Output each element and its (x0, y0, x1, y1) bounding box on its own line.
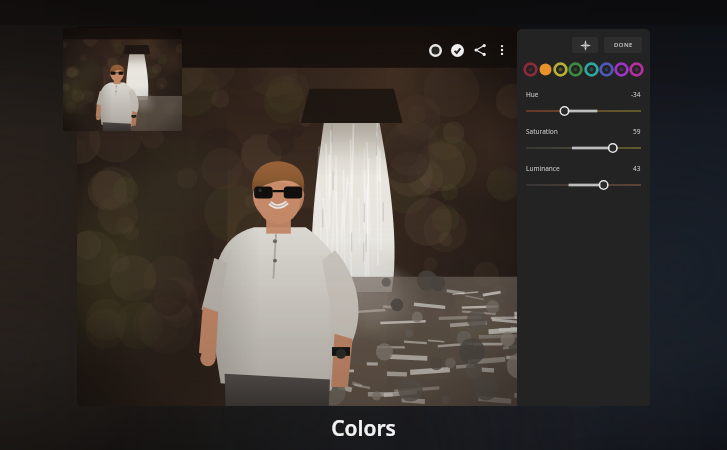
button[interactable]: Help (77, 26, 520, 406)
button[interactable]: Colour swatch (630, 63, 643, 76)
button[interactable]: Hue (526, 90, 641, 127)
button[interactable]: Target picker (572, 37, 598, 53)
button[interactable]: Saturation (526, 127, 641, 164)
button[interactable]: Colour swatch (539, 63, 552, 76)
staticText: DONE (614, 41, 633, 49)
staticText: 59 (633, 127, 641, 136)
button[interactable]: DONE (604, 37, 642, 53)
staticText: Hue (526, 90, 539, 99)
staticText: -34 (631, 90, 641, 99)
button[interactable]: Colour swatch (524, 63, 537, 76)
staticText: Luminance (526, 164, 560, 173)
button[interactable]: Help (424, 39, 446, 61)
button[interactable]: Colour swatch (600, 63, 613, 76)
button[interactable]: Apply (446, 39, 468, 61)
staticText: 43 (633, 164, 641, 173)
button[interactable]: Colour swatch (554, 63, 567, 76)
staticText: Colors (331, 414, 396, 443)
button[interactable]: Luminance (526, 164, 641, 201)
button[interactable]: More options (492, 40, 512, 60)
button[interactable] (63, 28, 182, 131)
button[interactable]: Colour swatch (585, 63, 598, 76)
button[interactable]: Share (468, 38, 492, 62)
button[interactable]: Colour swatch (615, 63, 628, 76)
button[interactable]: Colour swatch (569, 63, 582, 76)
staticText: Saturation (526, 127, 558, 136)
